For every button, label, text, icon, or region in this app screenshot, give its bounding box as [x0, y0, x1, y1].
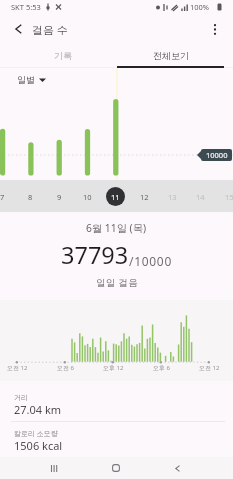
staticText: 오전 6	[57, 364, 74, 372]
staticText: 오후 12	[103, 364, 124, 372]
button[interactable]: Home	[98, 457, 134, 479]
staticText: 전체보기	[153, 50, 189, 61]
staticText: 10	[83, 192, 92, 202]
button[interactable]: 칼로리 소모량	[0, 422, 233, 458]
staticText: 6월 11일 (목)	[86, 221, 147, 235]
staticText: 13	[168, 192, 177, 202]
button[interactable]: 기록	[9, 42, 116, 68]
staticText: 기록	[54, 50, 72, 61]
staticText: 칼로리 소모량	[14, 429, 58, 439]
button[interactable]: 14	[191, 187, 210, 206]
button[interactable]: 15	[220, 187, 233, 206]
staticText: 37793	[61, 239, 129, 271]
staticText: 12	[140, 192, 149, 202]
button[interactable]: Back	[159, 457, 195, 479]
button[interactable]: More options	[205, 16, 225, 42]
button[interactable]: 일별	[17, 74, 46, 85]
staticText: 오전 12	[199, 364, 220, 372]
button[interactable]: 13	[163, 187, 182, 206]
staticText: 8	[28, 192, 33, 202]
staticText: 1506 kcal	[14, 438, 63, 453]
staticText: 오후 6	[153, 364, 170, 372]
staticText: 15	[225, 192, 233, 202]
button[interactable]: 거리	[0, 381, 233, 421]
button[interactable]: 10	[78, 187, 97, 206]
staticText: 27.04 km	[14, 402, 62, 417]
staticText: 7	[0, 192, 5, 202]
staticText: 14	[196, 192, 205, 202]
button[interactable]: 전체보기	[117, 42, 224, 68]
staticText: /10000	[129, 253, 172, 269]
button[interactable]: 11	[106, 187, 125, 206]
staticText: 일별	[17, 74, 35, 85]
staticText: 9	[57, 192, 62, 202]
staticText: 11	[111, 192, 120, 202]
staticText: SKT 5:53	[11, 2, 41, 12]
button[interactable]: 7	[0, 187, 12, 206]
staticText: 100%	[190, 2, 210, 12]
staticText: 10000	[206, 150, 228, 160]
button[interactable]: Recents	[36, 457, 72, 479]
staticText: 오전 12	[7, 364, 28, 372]
button[interactable]: Back	[8, 16, 28, 42]
staticText: 거리	[14, 393, 28, 402]
staticText: 걸음 수	[32, 22, 68, 37]
staticText: 일일 걸음	[96, 276, 138, 289]
button[interactable]: 12	[135, 187, 154, 206]
button[interactable]: 8	[21, 187, 40, 206]
button[interactable]: 9	[50, 187, 69, 206]
